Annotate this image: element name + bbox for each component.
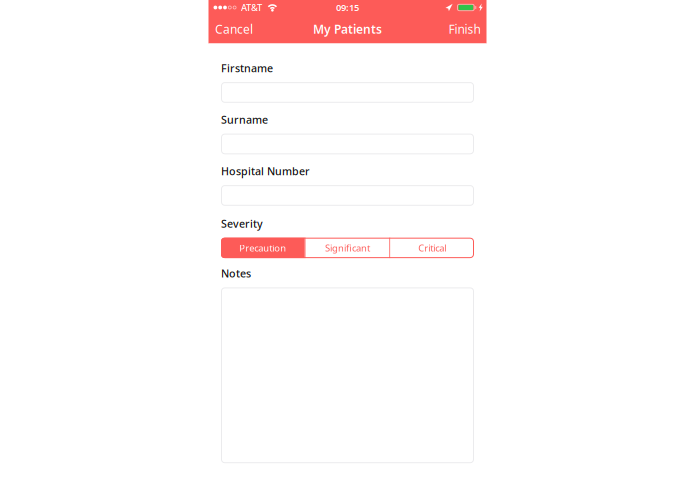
staticText: Finish: [448, 21, 480, 37]
button[interactable]: Finish: [442, 18, 486, 39]
button[interactable]: Firstname: [221, 82, 474, 103]
staticText: 09:15: [336, 1, 359, 14]
staticText: Precaution: [239, 242, 286, 254]
button[interactable]: Significant: [306, 238, 389, 258]
staticText: Cancel: [215, 21, 253, 37]
button[interactable]: Surname: [221, 134, 474, 154]
button[interactable]: Hospital Number: [221, 185, 474, 206]
button[interactable]: Cancel: [208, 18, 259, 39]
staticText: AT&T: [241, 1, 262, 14]
staticText: Firstname: [221, 61, 273, 75]
staticText: Hospital Number: [221, 164, 310, 178]
staticText: My Patients: [313, 21, 382, 37]
staticText: Surname: [221, 112, 268, 127]
staticText: Notes: [221, 266, 251, 280]
staticText: Severity: [221, 217, 263, 231]
button[interactable]: Precaution: [221, 238, 305, 258]
staticText: Significant: [325, 242, 370, 254]
staticText: Critical: [418, 242, 446, 254]
button[interactable]: Critical: [390, 238, 474, 258]
